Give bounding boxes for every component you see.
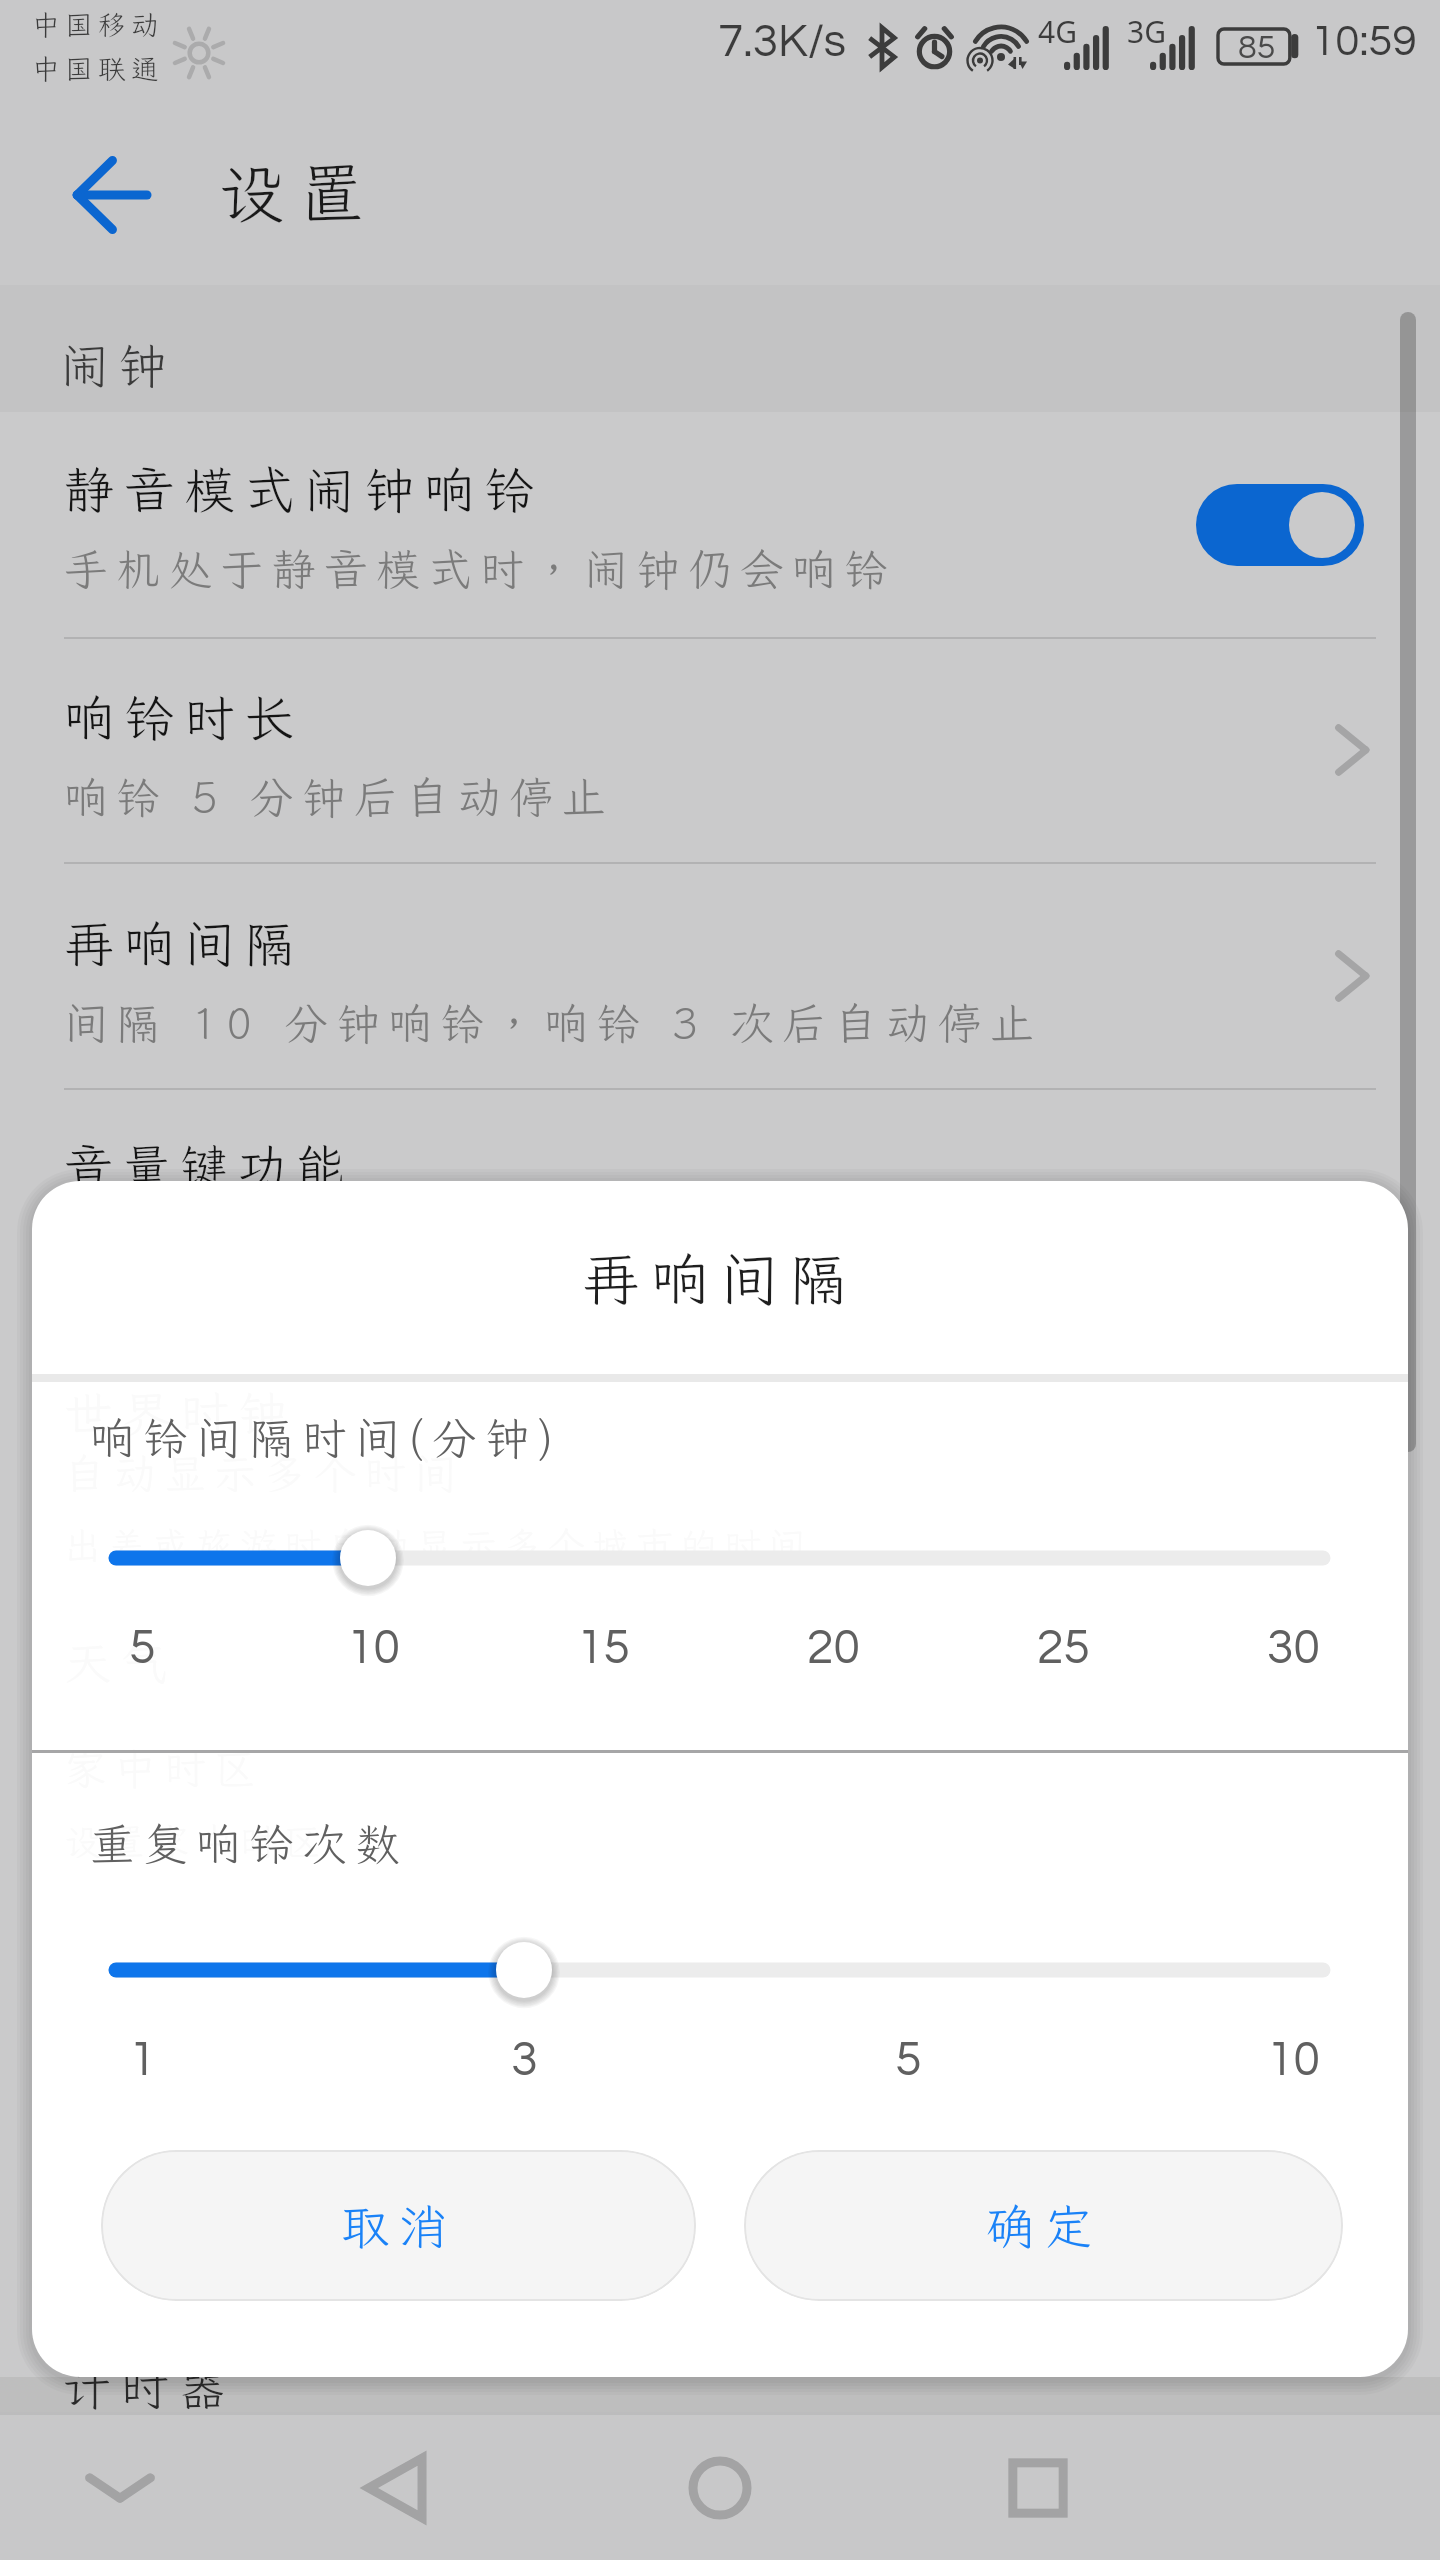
button[interactable]: Back bbox=[296, 2415, 496, 2560]
staticText: 取消 bbox=[341, 2194, 457, 2258]
staticText: 手机处于静音模式时，闹钟仍会响铃 bbox=[64, 540, 896, 598]
staticText: 5 bbox=[895, 2036, 922, 2085]
staticText: 中国移动 bbox=[32, 6, 164, 43]
staticText: 世界时钟 bbox=[64, 1381, 296, 1445]
staticText: 设置 bbox=[218, 148, 378, 237]
staticText: 确定 bbox=[986, 2194, 1102, 2258]
staticText: 闹钟 bbox=[60, 333, 176, 397]
button[interactable]: 确定 bbox=[744, 2150, 1343, 2301]
staticText: 响铃时长 bbox=[64, 684, 304, 750]
staticText: 响铃 5 分钟后自动停止 bbox=[64, 768, 614, 826]
staticText: 15 bbox=[577, 1624, 630, 1673]
staticText: 音量键功能 bbox=[64, 1134, 354, 1198]
staticText: 10 bbox=[1267, 2036, 1320, 2085]
staticText: 再响间隔 bbox=[582, 1240, 858, 1316]
staticText: 1 bbox=[129, 2036, 156, 2085]
staticText: 10:59 bbox=[1311, 19, 1417, 64]
staticText: 家中时区 bbox=[64, 1741, 265, 1796]
staticText: 10 bbox=[347, 1624, 400, 1673]
staticText: 85 bbox=[1238, 30, 1276, 65]
button[interactable]: 取消 bbox=[101, 2150, 696, 2301]
staticText: 设置家中时区 bbox=[64, 1817, 328, 1866]
staticText: 7.3K/s bbox=[718, 18, 847, 65]
button[interactable]: Collapse keyboard bbox=[20, 2415, 220, 2560]
staticText: 计时器 bbox=[62, 2355, 236, 2419]
staticText: 20 bbox=[807, 1624, 860, 1673]
staticText: 重复响铃次数 bbox=[90, 1814, 408, 1873]
staticText: 出差或旅游时自动显示多个城市的时间 bbox=[64, 1521, 812, 1570]
staticText: 30 bbox=[1267, 1624, 1320, 1673]
staticText: 间隔 10 分钟响铃，响铃 3 次后自动停止 bbox=[64, 994, 1042, 1052]
button[interactable]: Back bbox=[35, 120, 187, 270]
staticText: 中国联通 bbox=[32, 50, 164, 87]
staticText: 静音模式闹钟响铃 bbox=[64, 456, 544, 522]
button[interactable]: Home bbox=[620, 2415, 820, 2560]
button[interactable]: 静音模式闹钟响铃 bbox=[0, 412, 1440, 637]
staticText: 3 bbox=[511, 2036, 538, 2085]
staticText: 5 bbox=[129, 1624, 156, 1673]
button[interactable]: Recents bbox=[938, 2415, 1138, 2560]
staticText: 4G bbox=[1038, 11, 1077, 52]
staticText: 再响间隔 bbox=[64, 910, 304, 976]
staticText: 响铃间隔时间(分钟) bbox=[90, 1408, 563, 1467]
staticText: 自动显示多个时间 bbox=[64, 1446, 465, 1501]
button[interactable]: 再响间隔 bbox=[0, 886, 1440, 1088]
staticText: 25 bbox=[1037, 1624, 1090, 1673]
staticText: 天气 bbox=[64, 1631, 176, 1693]
button[interactable]: 响铃时长 bbox=[0, 660, 1440, 862]
staticText: 3G bbox=[1127, 11, 1166, 52]
